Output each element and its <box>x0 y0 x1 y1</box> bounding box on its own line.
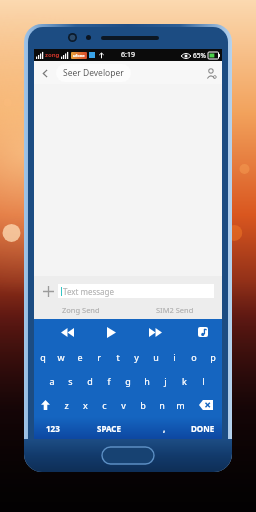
staticText: c <box>102 399 107 411</box>
staticText: v <box>121 399 126 411</box>
staticText: i <box>173 351 176 363</box>
button[interactable]: j <box>156 369 175 393</box>
staticText: x <box>83 399 88 411</box>
staticText: z <box>64 399 69 411</box>
staticText: m <box>176 399 185 411</box>
staticText: 123 <box>46 423 60 434</box>
staticText: p <box>210 351 216 363</box>
button[interactable]: g <box>118 369 137 393</box>
button[interactable]: x <box>76 393 95 417</box>
button[interactable]: Backspace <box>190 393 222 417</box>
staticText: w <box>57 351 65 363</box>
staticText: u <box>153 351 159 363</box>
staticText: Text message <box>63 286 115 297</box>
staticText: e <box>77 351 83 363</box>
button[interactable]: b <box>133 393 152 417</box>
staticText: l <box>202 375 205 387</box>
staticText: SPACE <box>97 423 121 434</box>
button[interactable]: Previous <box>56 321 78 343</box>
staticText: f <box>107 375 111 387</box>
button[interactable]: t <box>108 345 127 369</box>
button[interactable]: d <box>80 369 99 393</box>
button[interactable]: w <box>52 345 70 369</box>
button[interactable]: z <box>57 393 76 417</box>
button[interactable]: y <box>127 345 146 369</box>
button[interactable]: Shift <box>34 393 57 417</box>
button[interactable]: q <box>34 345 52 369</box>
button[interactable]: Zong Send <box>34 305 128 315</box>
staticText: zong <box>45 51 60 59</box>
staticText: j <box>164 375 167 387</box>
button[interactable]: Add attachment <box>38 281 58 301</box>
staticText: a <box>49 375 55 387</box>
staticText: , <box>163 423 166 434</box>
button[interactable]: v <box>114 393 133 417</box>
button[interactable]: m <box>171 393 190 417</box>
button[interactable]: Back <box>34 62 56 84</box>
staticText: n <box>159 399 165 411</box>
button[interactable]: f <box>99 369 118 393</box>
button[interactable]: k <box>175 369 194 393</box>
staticText: d <box>87 375 93 387</box>
button[interactable]: Contact info <box>200 62 222 84</box>
staticText: y <box>134 351 139 363</box>
staticText: b <box>140 399 146 411</box>
button[interactable]: c <box>95 393 114 417</box>
button[interactable]: Next <box>144 321 166 343</box>
staticText: t <box>116 351 120 363</box>
button[interactable]: Play <box>100 321 122 343</box>
staticText: DONE <box>191 423 215 434</box>
staticText: g <box>125 375 131 387</box>
button[interactable]: n <box>152 393 171 417</box>
button[interactable]: DONE <box>183 417 222 439</box>
staticText: q <box>40 351 46 363</box>
button[interactable]: , <box>146 417 183 439</box>
staticText: 65% <box>193 51 206 60</box>
button[interactable]: h <box>137 369 156 393</box>
button[interactable]: u <box>146 345 165 369</box>
button[interactable]: r <box>89 345 108 369</box>
staticText: o <box>191 351 197 363</box>
button[interactable]: i <box>165 345 184 369</box>
button[interactable]: l <box>194 369 213 393</box>
staticText: SIM2 Send <box>156 305 194 315</box>
staticText: h <box>144 375 150 387</box>
staticText: r <box>97 351 101 363</box>
staticText: ufone <box>73 53 85 58</box>
button[interactable]: o <box>184 345 203 369</box>
button[interactable]: SPACE <box>72 417 146 439</box>
button[interactable]: p <box>203 345 222 369</box>
button[interactable]: s <box>61 369 80 393</box>
button[interactable]: a <box>42 369 61 393</box>
button[interactable]: Text message <box>58 284 214 298</box>
staticText: s <box>68 375 73 387</box>
button[interactable]: 123 <box>34 417 72 439</box>
staticText: 6:19 <box>121 50 135 60</box>
staticText: Zong Send <box>62 305 100 315</box>
staticText: k <box>182 375 187 387</box>
button[interactable]: e <box>70 345 89 369</box>
staticText: Seer Developer <box>63 67 124 79</box>
button[interactable]: Seer Developer <box>56 64 131 82</box>
button[interactable]: SIM2 Send <box>128 305 222 315</box>
button[interactable]: Music library <box>192 321 214 343</box>
